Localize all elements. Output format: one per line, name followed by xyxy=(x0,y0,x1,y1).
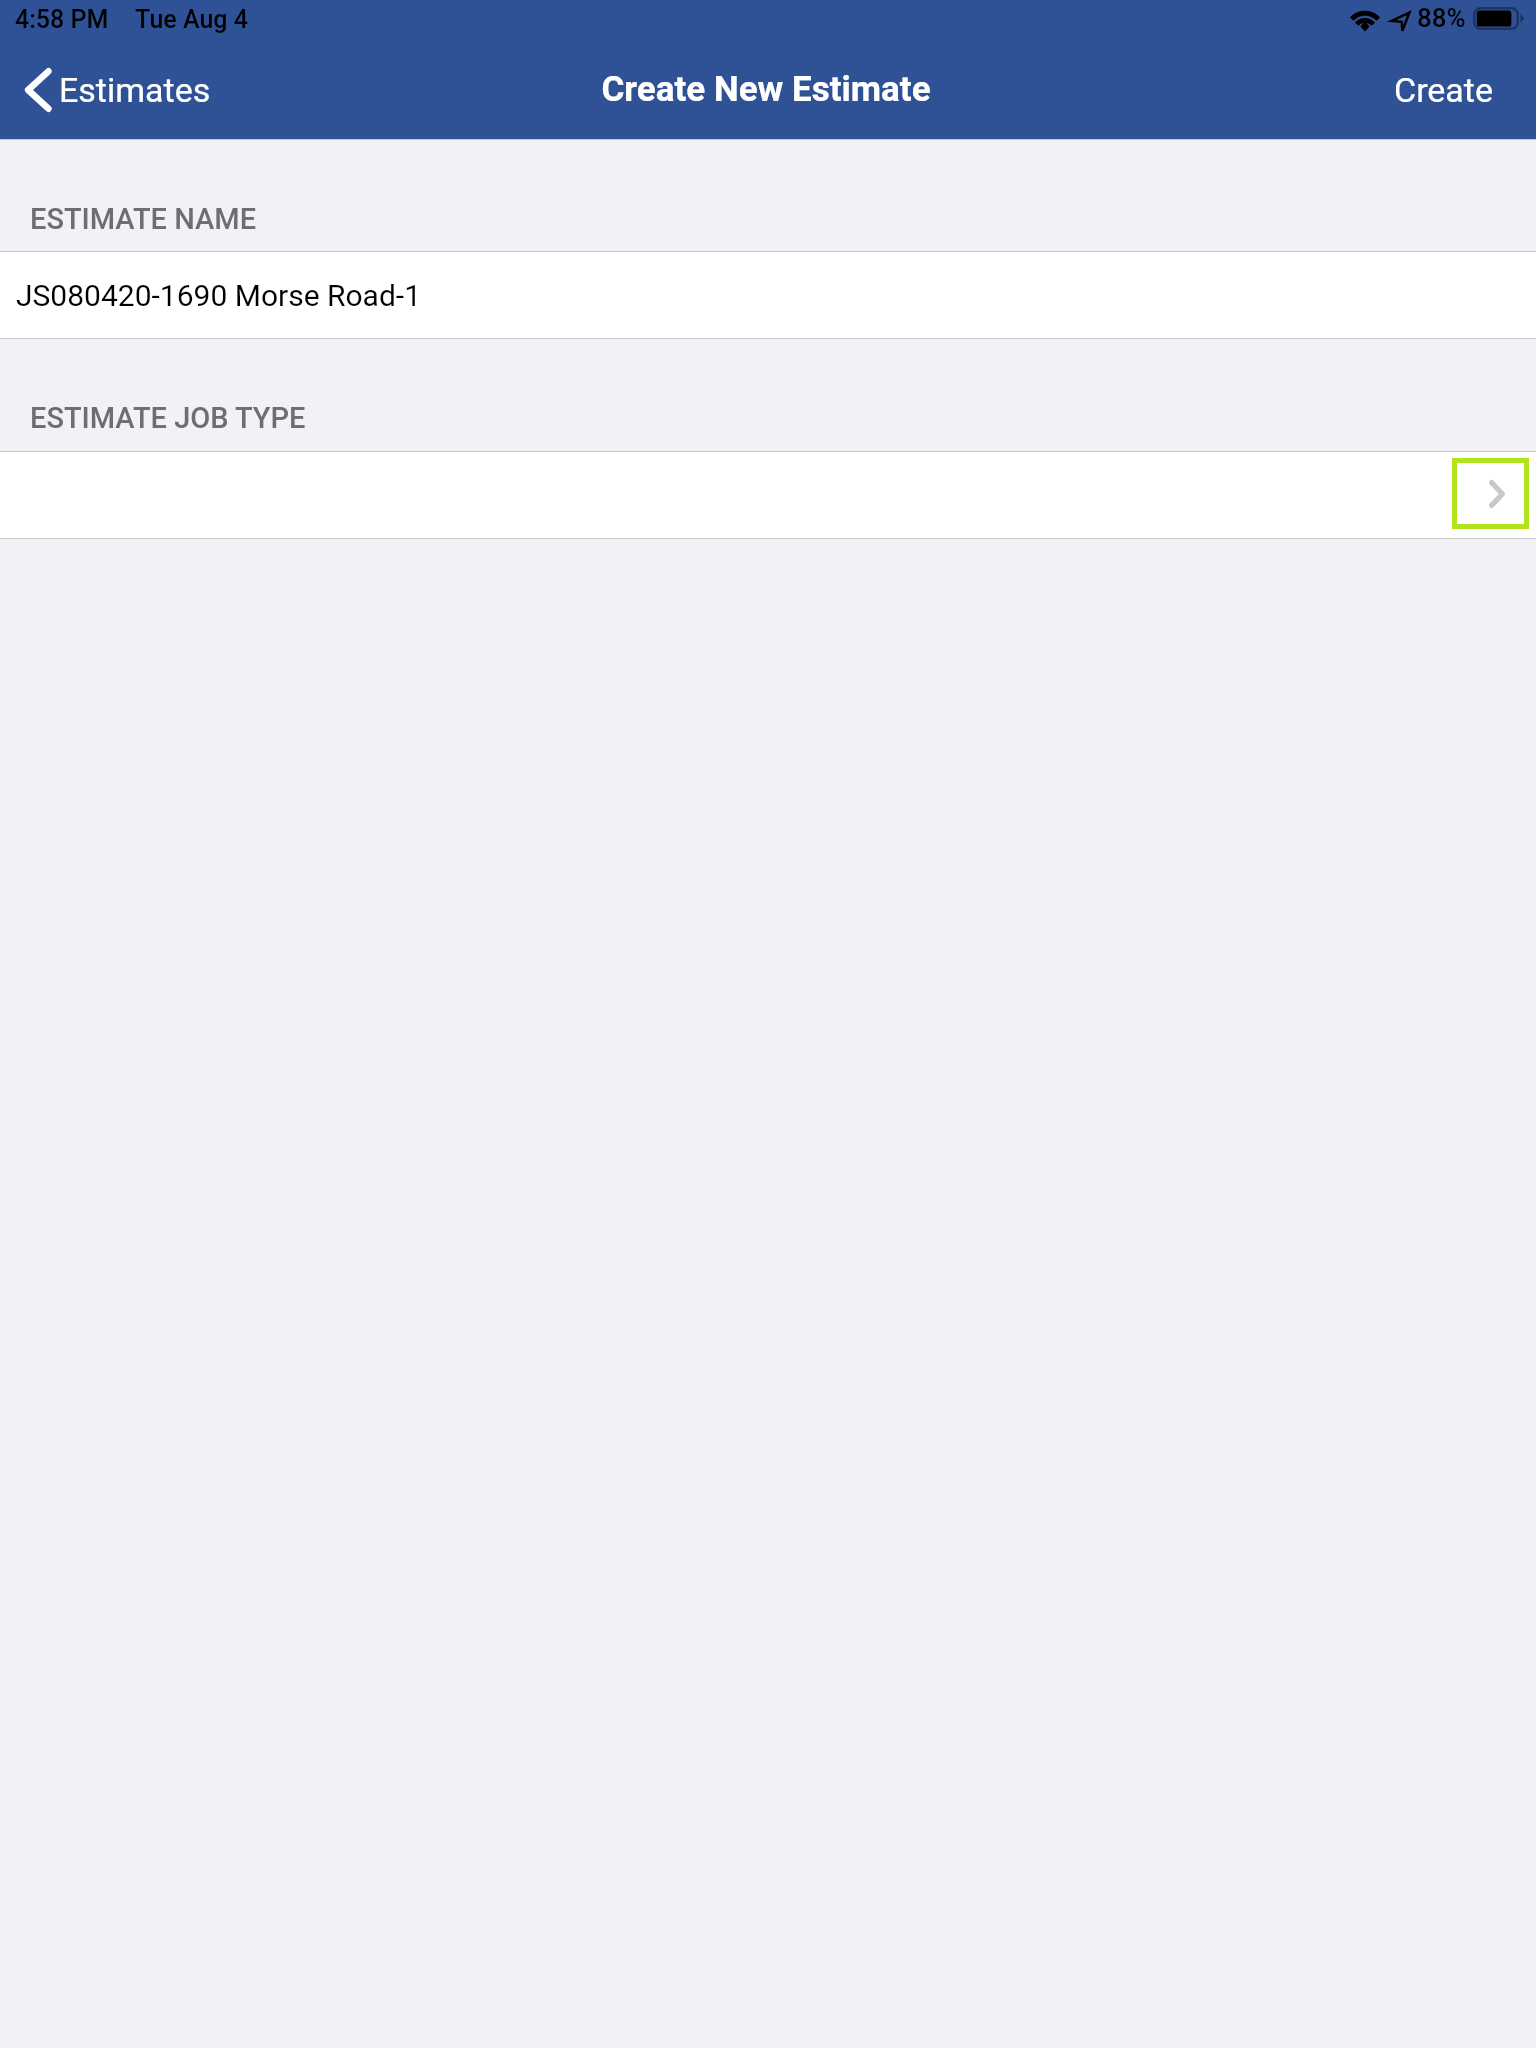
other: Back xyxy=(25,68,51,112)
staticText: ESTIMATE NAME xyxy=(30,202,257,236)
staticText: 88% xyxy=(1417,3,1466,33)
staticText: Create xyxy=(1394,70,1494,110)
button[interactable]: Choose estimate job type xyxy=(1452,458,1529,529)
button[interactable]: JS080420-1690 Morse Road-1 xyxy=(0,252,1536,338)
button[interactable]: Create xyxy=(1370,60,1536,120)
button[interactable]: Back xyxy=(0,58,223,122)
staticText: Estimates xyxy=(59,70,211,110)
staticText: 4:58 PM xyxy=(15,5,109,34)
staticText: ESTIMATE JOB TYPE xyxy=(30,401,306,435)
staticText: Tue Aug 4 xyxy=(135,5,248,34)
staticText: JS080420-1690 Morse Road-1 xyxy=(16,278,421,313)
staticText: Create New Estimate xyxy=(601,69,931,110)
button[interactable]: Choose estimate job type xyxy=(0,452,1536,538)
